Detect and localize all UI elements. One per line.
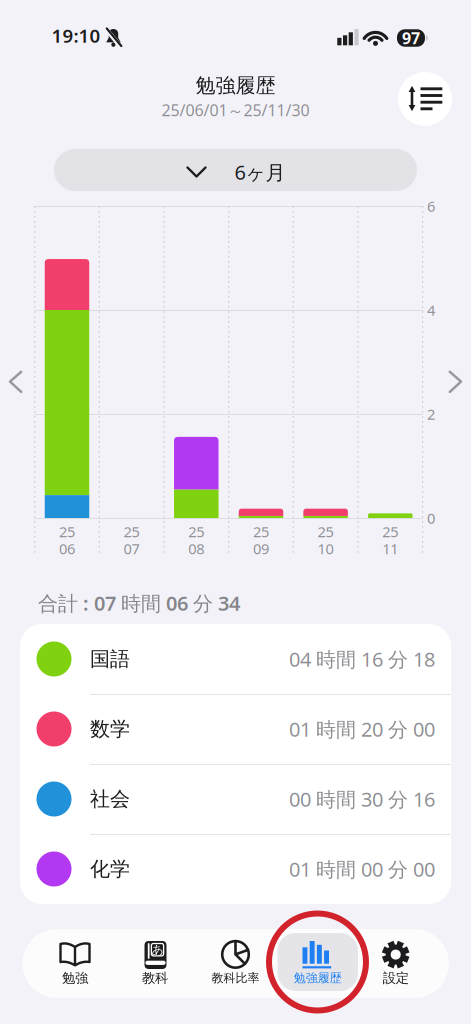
button[interactable]: 設定 <box>354 929 438 993</box>
staticText: 教科比率 <box>211 971 259 985</box>
button[interactable] <box>6 368 26 396</box>
staticText: 00 時間 30 分 16 <box>289 786 435 812</box>
button[interactable]: 社会 <box>20 764 451 834</box>
staticText: 01 時間 00 分 00 <box>289 856 435 882</box>
staticText: 国語 <box>90 647 130 671</box>
staticText: 25 <box>318 522 334 541</box>
button[interactable]: あ <box>113 929 197 993</box>
staticText: 04 時間 16 分 18 <box>289 646 435 672</box>
button[interactable]: 化学 <box>20 834 451 904</box>
staticText: 08 <box>188 539 204 558</box>
staticText: 25 <box>253 522 269 541</box>
staticText: 97 <box>402 27 420 49</box>
button[interactable] <box>398 72 452 126</box>
staticText: 2 <box>427 404 435 424</box>
staticText: 6 <box>427 196 435 216</box>
staticText: 25/06/01～25/11/30 <box>161 99 309 121</box>
button[interactable]: 国語 <box>20 624 451 694</box>
staticText: 25 <box>188 522 204 541</box>
staticText: 25 <box>382 522 398 541</box>
staticText: 勉強履歴 <box>195 73 275 98</box>
staticText: 10 <box>318 539 334 558</box>
staticText: 4 <box>427 300 435 320</box>
button[interactable] <box>445 368 465 396</box>
staticText: あ <box>151 942 163 957</box>
staticText: 設定 <box>383 970 409 986</box>
staticText: 合計 : 07 時間 06 分 34 <box>38 590 240 616</box>
staticText: 01 時間 20 分 00 <box>289 716 435 742</box>
staticText: 09 <box>253 539 269 558</box>
staticText: 社会 <box>90 787 130 811</box>
staticText: 07 <box>124 539 140 558</box>
button[interactable]: 勉強履歴 <box>276 929 360 993</box>
staticText: 教科 <box>142 970 168 986</box>
staticText: 25 <box>59 522 75 541</box>
staticText: 25 <box>124 522 140 541</box>
button[interactable]: 勉強 <box>33 929 117 993</box>
staticText: 勉強履歴 <box>294 971 342 985</box>
staticText: 勉強 <box>62 970 88 986</box>
staticText: 化学 <box>90 857 130 881</box>
staticText: 11 <box>382 539 398 558</box>
button[interactable]: 数学 <box>20 694 451 764</box>
staticText: 19:10 <box>51 23 100 48</box>
button[interactable]: 6ヶ月 <box>54 149 417 191</box>
staticText: 数学 <box>90 717 130 741</box>
staticText: 06 <box>59 539 75 558</box>
staticText: 0 <box>427 508 435 528</box>
staticText: 6ヶ月 <box>234 159 285 185</box>
button[interactable]: 教科比率 <box>193 929 277 993</box>
